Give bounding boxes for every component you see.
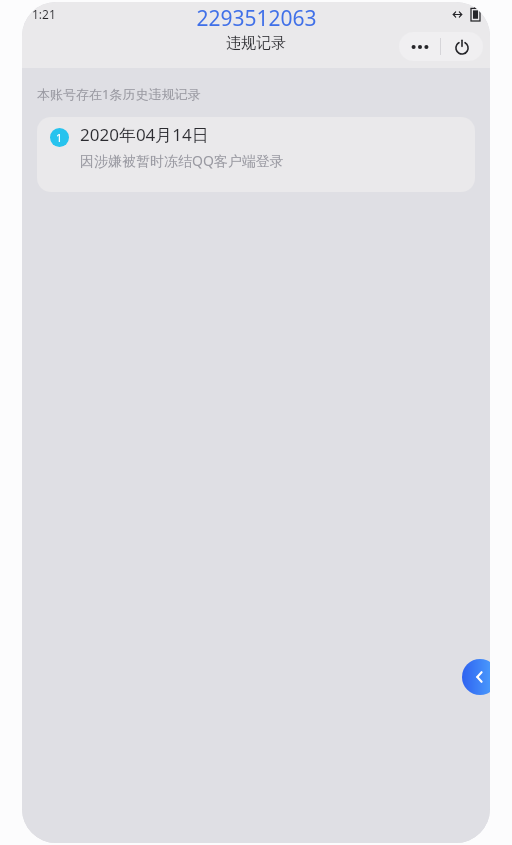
staticText: 2020年04月14日: [80, 123, 209, 146]
button[interactable]: Close: [441, 32, 483, 61]
button[interactable]: 1: [37, 117, 475, 192]
staticText: 1: [56, 130, 63, 145]
button[interactable]: More options: [399, 32, 440, 61]
staticText: 1:21: [32, 6, 56, 22]
staticText: 2293512063: [196, 4, 317, 33]
staticText: 违规记录: [226, 34, 286, 53]
staticText: 因涉嫌被暂时冻结QQ客户端登录: [80, 151, 284, 170]
staticText: 本账号存在1条历史违规记录: [37, 85, 201, 103]
button[interactable]: Back: [462, 659, 490, 695]
